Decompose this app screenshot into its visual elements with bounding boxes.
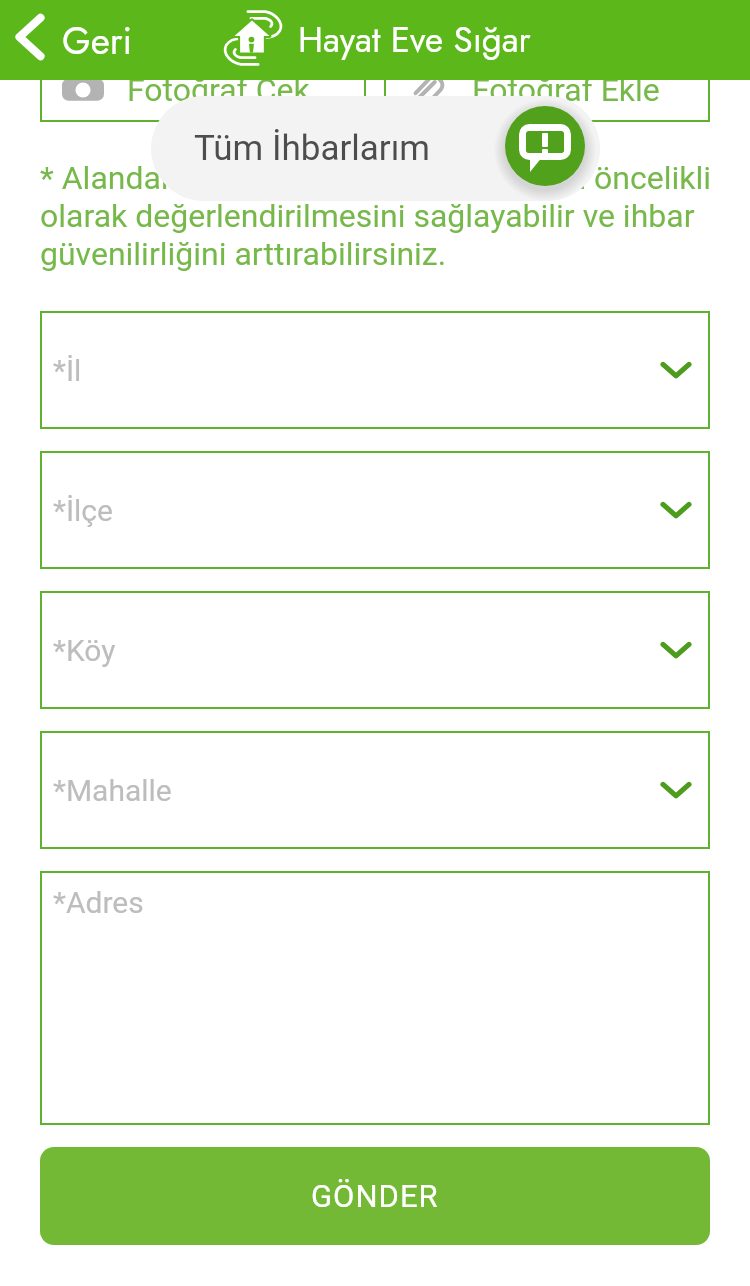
staticText: GÖNDER <box>311 1178 439 1214</box>
staticText: *Mahalle <box>53 773 172 808</box>
button[interactable]: *Köy <box>40 591 710 709</box>
button[interactable]: *Mahalle <box>40 731 710 849</box>
staticText: Geri <box>62 14 133 67</box>
button[interactable]: Tüm İhbarlarım <box>505 106 585 186</box>
staticText: Fotoğraf Ekle <box>472 71 660 109</box>
button[interactable]: *İlçe <box>40 451 710 569</box>
button[interactable]: Fotoğraf Ekle <box>384 44 710 122</box>
staticText: Tüm İhbarlarım <box>194 128 431 169</box>
staticText: *Adres <box>53 885 144 920</box>
button[interactable]: GÖNDER <box>40 1147 710 1245</box>
staticText: *İl <box>53 353 82 388</box>
staticText: Hayat Eve Sığar <box>298 15 531 66</box>
button[interactable]: Fotoğraf Çek <box>40 44 366 122</box>
button[interactable]: *İl <box>40 311 710 429</box>
button[interactable]: Geri <box>6 0 133 80</box>
staticText: * Alandaki bilgileri doldurmanız ihbarın… <box>40 159 712 273</box>
staticText: Fotoğraf Çek <box>127 71 310 109</box>
button[interactable]: Tüm İhbarlarım <box>151 96 600 201</box>
staticText: *Köy <box>53 633 116 668</box>
staticText: *İlçe <box>53 493 113 528</box>
button[interactable]: *Adres <box>40 871 710 1125</box>
